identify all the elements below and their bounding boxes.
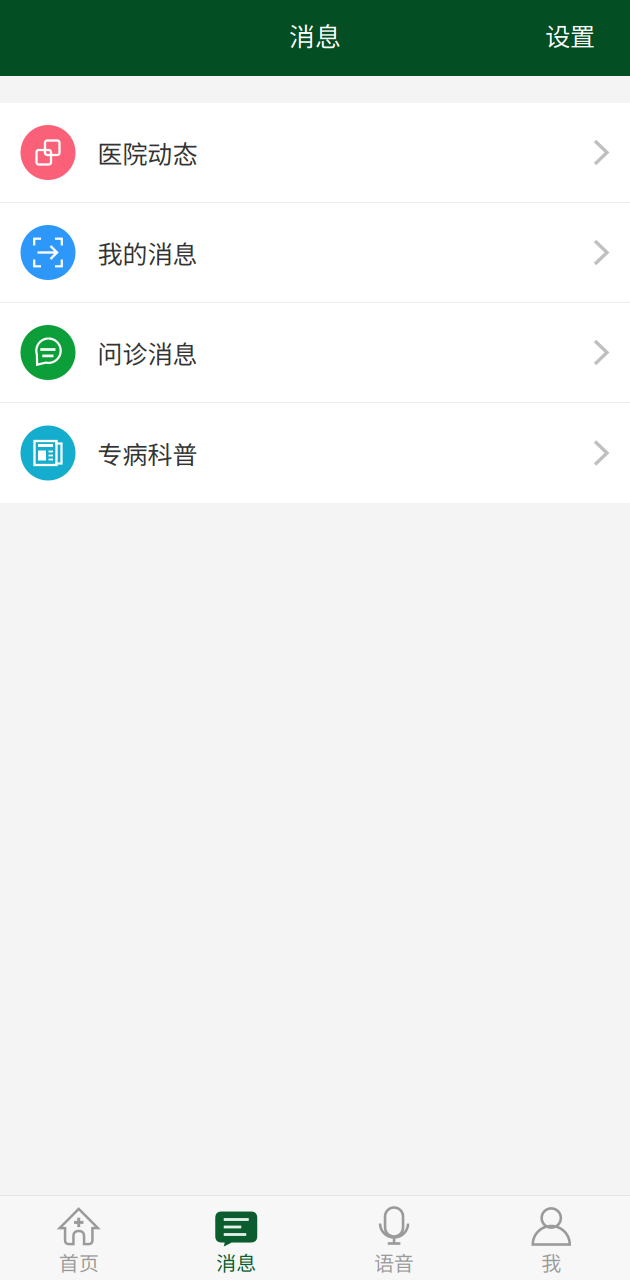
staticText: 设置 <box>545 17 595 53</box>
staticText: 我 <box>541 1247 561 1276</box>
staticText: 问诊消息 <box>97 334 197 371</box>
button[interactable]: 消息 <box>157 1195 315 1280</box>
staticText: 首页 <box>59 1247 99 1276</box>
staticText: 消息 <box>216 1247 256 1276</box>
button[interactable]: 首页 <box>0 1195 157 1280</box>
button[interactable]: 专病科普 <box>0 403 630 503</box>
button[interactable]: 问诊消息 <box>0 303 630 403</box>
button[interactable]: 语音 <box>315 1195 472 1280</box>
staticText: 医院动态 <box>97 134 197 171</box>
button[interactable]: 设置 <box>545 17 630 59</box>
staticText: 语音 <box>374 1247 414 1276</box>
staticText: 我的消息 <box>97 234 197 271</box>
button[interactable]: 医院动态 <box>0 103 630 203</box>
button[interactable]: 我 <box>472 1195 630 1280</box>
button[interactable]: 我的消息 <box>0 203 630 303</box>
staticText: 专病科普 <box>97 435 197 471</box>
staticText: 消息 <box>289 16 341 54</box>
